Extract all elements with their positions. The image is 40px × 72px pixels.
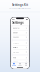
staticText: 9:41 bbox=[12, 19, 15, 20]
staticText: Settings Kit bbox=[12, 3, 28, 7]
button[interactable]: Battery bbox=[12, 45, 28, 50]
staticText: Settings bbox=[12, 21, 23, 25]
button[interactable]: Sounds bbox=[12, 35, 28, 39]
button[interactable]: Storage bbox=[12, 50, 28, 54]
staticText: Help bbox=[13, 57, 16, 59]
button[interactable]: Privacy bbox=[12, 41, 28, 45]
staticText: A grouped settings list for iOS apps bbox=[9, 8, 31, 9]
button[interactable]: Home bbox=[11, 62, 17, 67]
staticText: Display bbox=[13, 32, 18, 34]
button[interactable]: General bbox=[12, 26, 28, 31]
button[interactable]: About bbox=[12, 60, 28, 64]
button[interactable]: Apps bbox=[17, 62, 23, 67]
staticText: Home bbox=[12, 65, 16, 66]
staticText: Privacy bbox=[13, 42, 19, 44]
staticText: Battery bbox=[13, 47, 18, 48]
button[interactable]: Help bbox=[12, 56, 28, 60]
staticText: About bbox=[13, 61, 17, 63]
staticText: Sounds bbox=[13, 36, 19, 38]
staticText: Apps bbox=[18, 65, 22, 66]
staticText: General bbox=[13, 27, 19, 29]
staticText: Storage bbox=[13, 51, 19, 53]
button[interactable]: Display bbox=[12, 31, 28, 35]
button[interactable]: Me bbox=[23, 62, 29, 67]
